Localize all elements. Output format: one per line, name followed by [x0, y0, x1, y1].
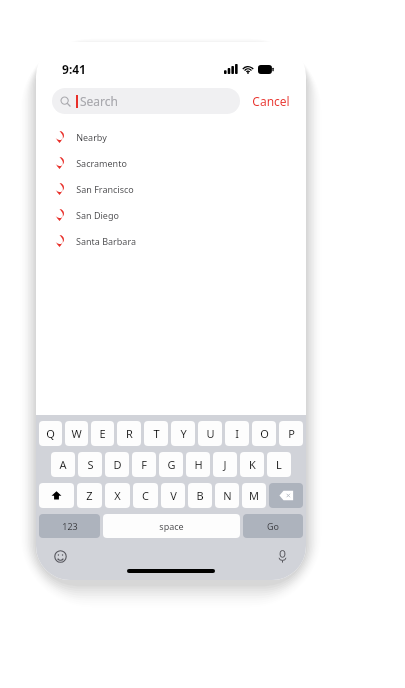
- button[interactable]: space: [103, 514, 240, 538]
- staticText: Nearby: [76, 131, 107, 143]
- button[interactable]: Backspace: [269, 483, 303, 508]
- staticText: V: [170, 488, 177, 503]
- button[interactable]: Y: [171, 421, 195, 446]
- button[interactable]: P: [279, 421, 303, 446]
- button[interactable]: S: [78, 452, 102, 477]
- staticText: T: [153, 426, 160, 441]
- button[interactable]: U: [198, 421, 222, 446]
- staticText: I: [235, 426, 239, 441]
- staticText: space: [159, 520, 184, 532]
- button[interactable]: L: [267, 452, 291, 477]
- staticText: R: [126, 426, 133, 441]
- button[interactable]: H: [186, 452, 210, 477]
- staticText: Cancel: [252, 93, 290, 109]
- button[interactable]: Q: [39, 421, 62, 446]
- staticText: K: [249, 457, 256, 472]
- staticText: U: [206, 426, 215, 441]
- button[interactable]: Z: [77, 483, 102, 508]
- button[interactable]: J: [213, 452, 237, 477]
- button[interactable]: Nearby: [36, 124, 306, 150]
- button[interactable]: San Francisco: [36, 176, 306, 202]
- button[interactable]: Cancel: [250, 89, 292, 113]
- button[interactable]: C: [133, 483, 158, 508]
- button[interactable]: A: [51, 452, 75, 477]
- button[interactable]: N: [215, 483, 239, 508]
- staticText: Santa Barbara: [76, 235, 136, 247]
- staticText: P: [288, 426, 295, 441]
- button[interactable]: R: [117, 421, 141, 446]
- button[interactable]: G: [159, 452, 183, 477]
- button[interactable]: K: [240, 452, 264, 477]
- staticText: San Francisco: [76, 183, 134, 195]
- button[interactable]: V: [161, 483, 185, 508]
- staticText: Y: [180, 426, 187, 441]
- button[interactable]: E: [91, 421, 114, 446]
- staticText: O: [260, 426, 269, 441]
- staticText: G: [167, 457, 176, 472]
- button[interactable]: D: [105, 452, 129, 477]
- staticText: 9:41: [62, 61, 86, 77]
- staticText: Q: [46, 426, 55, 441]
- staticText: M: [249, 488, 259, 503]
- button[interactable]: X: [105, 483, 130, 508]
- staticText: B: [196, 488, 204, 503]
- button[interactable]: I: [225, 421, 249, 446]
- button[interactable]: Emoji: [50, 546, 70, 566]
- button[interactable]: San Diego: [36, 202, 306, 228]
- button[interactable]: Go: [243, 514, 303, 538]
- button[interactable]: Santa Barbara: [36, 228, 306, 254]
- button[interactable]: Shift: [39, 483, 74, 508]
- staticText: San Diego: [76, 209, 119, 221]
- staticText: 123: [62, 520, 78, 532]
- staticText: X: [114, 488, 121, 503]
- staticText: L: [276, 457, 282, 472]
- staticText: C: [142, 488, 149, 503]
- staticText: E: [99, 426, 106, 441]
- staticText: F: [141, 457, 147, 472]
- staticText: Search: [80, 93, 118, 109]
- button[interactable]: O: [252, 421, 276, 446]
- button[interactable]: B: [188, 483, 212, 508]
- staticText: S: [87, 457, 94, 472]
- button[interactable]: Search: [52, 88, 240, 114]
- staticText: N: [223, 488, 232, 503]
- button[interactable]: 123: [39, 514, 100, 538]
- staticText: A: [59, 457, 67, 472]
- button[interactable]: M: [242, 483, 266, 508]
- button[interactable]: W: [65, 421, 88, 446]
- button[interactable]: Dictation: [272, 546, 292, 566]
- button[interactable]: T: [144, 421, 168, 446]
- staticText: W: [71, 426, 82, 441]
- staticText: J: [223, 457, 227, 472]
- button[interactable]: F: [132, 452, 156, 477]
- staticText: Go: [267, 520, 279, 532]
- staticText: H: [194, 457, 203, 472]
- staticText: Z: [86, 488, 93, 503]
- staticText: Sacramento: [76, 157, 127, 169]
- staticText: D: [113, 457, 122, 472]
- button[interactable]: Sacramento: [36, 150, 306, 176]
